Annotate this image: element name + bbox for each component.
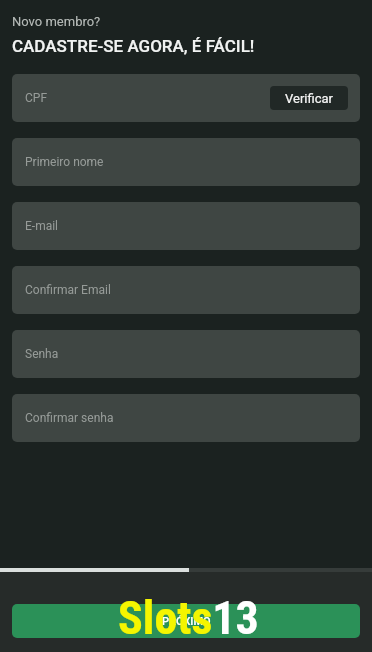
staticText: Primeiro nome — [25, 155, 104, 169]
staticText: Novo membro? — [12, 14, 101, 29]
staticText: Senha — [25, 347, 59, 361]
staticText: CPF — [25, 91, 48, 105]
staticText: Confirmar senha — [25, 411, 114, 425]
staticText: Verificar — [285, 91, 333, 106]
button[interactable]: Confirmar senha — [12, 394, 360, 442]
staticText: E-mail — [25, 219, 59, 233]
button[interactable]: PRÓXIMO — [12, 604, 360, 638]
button[interactable]: Confirmar Email — [12, 266, 360, 314]
button[interactable]: Senha — [12, 330, 360, 378]
staticText: PRÓXIMO — [162, 615, 211, 628]
button[interactable]: Verificar — [270, 86, 348, 110]
staticText: CADASTRE-SE AGORA, É FÁCIL! — [12, 36, 255, 56]
button[interactable]: Primeiro nome — [12, 138, 360, 186]
button[interactable]: E-mail — [12, 202, 360, 250]
staticText: Confirmar Email — [25, 283, 111, 297]
staticText: Slots13 — [118, 591, 259, 645]
button[interactable]: CPF — [12, 74, 360, 122]
